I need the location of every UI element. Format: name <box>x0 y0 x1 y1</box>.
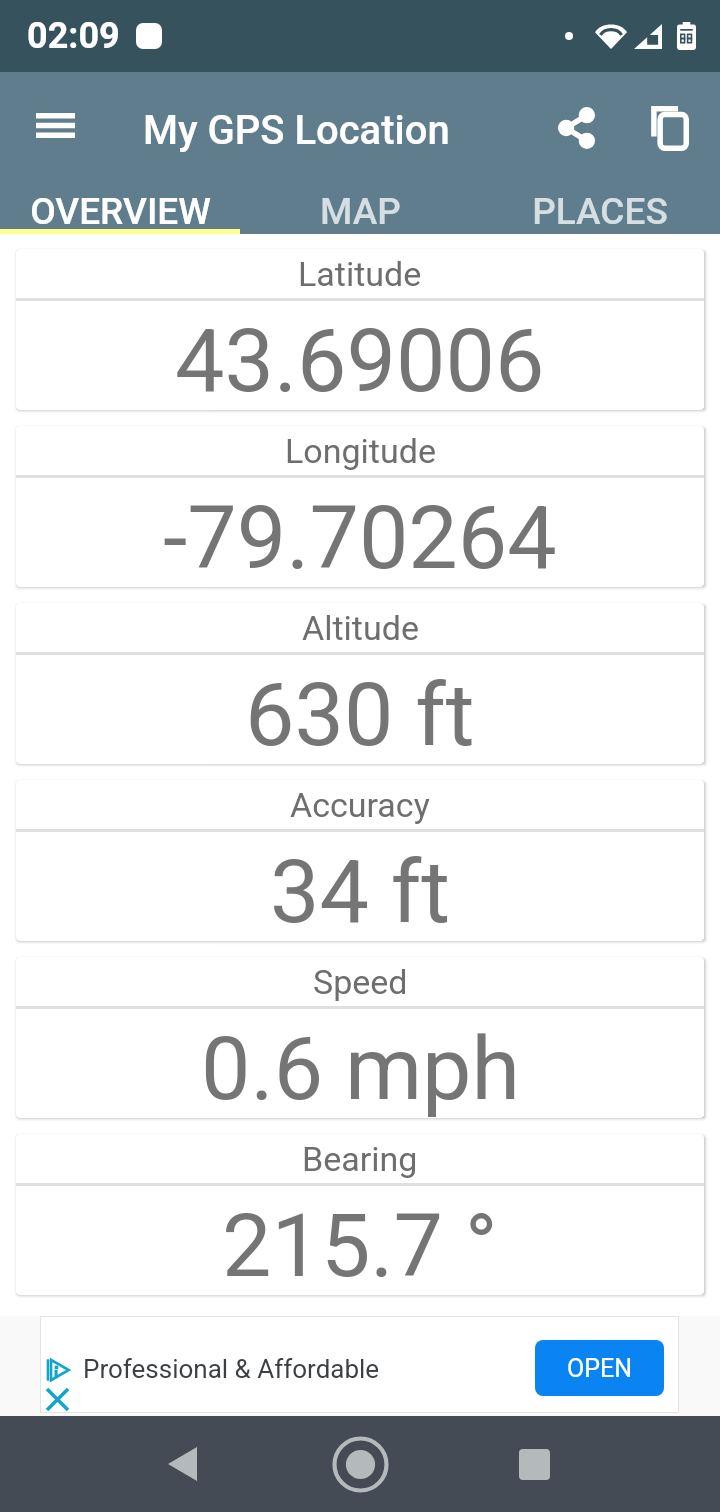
button[interactable]: OPEN <box>535 1340 664 1396</box>
staticText: -79.70264 <box>163 486 557 587</box>
button[interactable]: Latitude <box>16 249 704 410</box>
button[interactable]: Recents <box>494 1424 574 1504</box>
staticText: OPEN <box>567 1354 633 1383</box>
staticText: Professional & Affordable <box>83 1354 380 1384</box>
staticText: 34 ft <box>270 840 451 941</box>
button[interactable]: Altitude <box>16 603 704 764</box>
button[interactable]: Copy <box>629 88 709 168</box>
staticText: OVERVIEW <box>30 190 211 233</box>
staticText: Accuracy <box>290 785 430 825</box>
button[interactable]: Back <box>142 1424 222 1504</box>
staticText: 0.6 mph <box>201 1017 520 1118</box>
button[interactable]: Menu <box>17 87 93 163</box>
staticText: My GPS Location <box>143 107 450 154</box>
button[interactable]: Close ad <box>47 1389 68 1410</box>
staticText: 215.7 ° <box>222 1194 498 1295</box>
staticText: 43.69006 <box>175 309 545 410</box>
staticText: MAP <box>320 190 401 233</box>
button[interactable]: AdChoices <box>41 1317 678 1412</box>
button[interactable]: Share <box>536 88 616 168</box>
staticText: 02:09 <box>27 15 120 57</box>
button[interactable]: OVERVIEW <box>0 177 240 234</box>
button[interactable]: MAP <box>240 177 480 234</box>
button[interactable]: Bearing <box>16 1134 704 1295</box>
button[interactable]: Longitude <box>16 426 704 587</box>
button[interactable]: AdChoices <box>46 1358 70 1382</box>
button[interactable]: Home <box>320 1424 400 1504</box>
staticText: Altitude <box>302 608 419 648</box>
staticText: PLACES <box>532 190 668 233</box>
button[interactable]: Speed <box>16 957 704 1118</box>
staticText: 630 ft <box>245 663 475 764</box>
button[interactable]: Accuracy <box>16 780 704 941</box>
staticText: Longitude <box>285 431 436 471</box>
staticText: Speed <box>313 962 408 1002</box>
staticText: Bearing <box>302 1139 418 1179</box>
button[interactable]: PLACES <box>480 177 720 234</box>
staticText: Latitude <box>298 254 422 294</box>
